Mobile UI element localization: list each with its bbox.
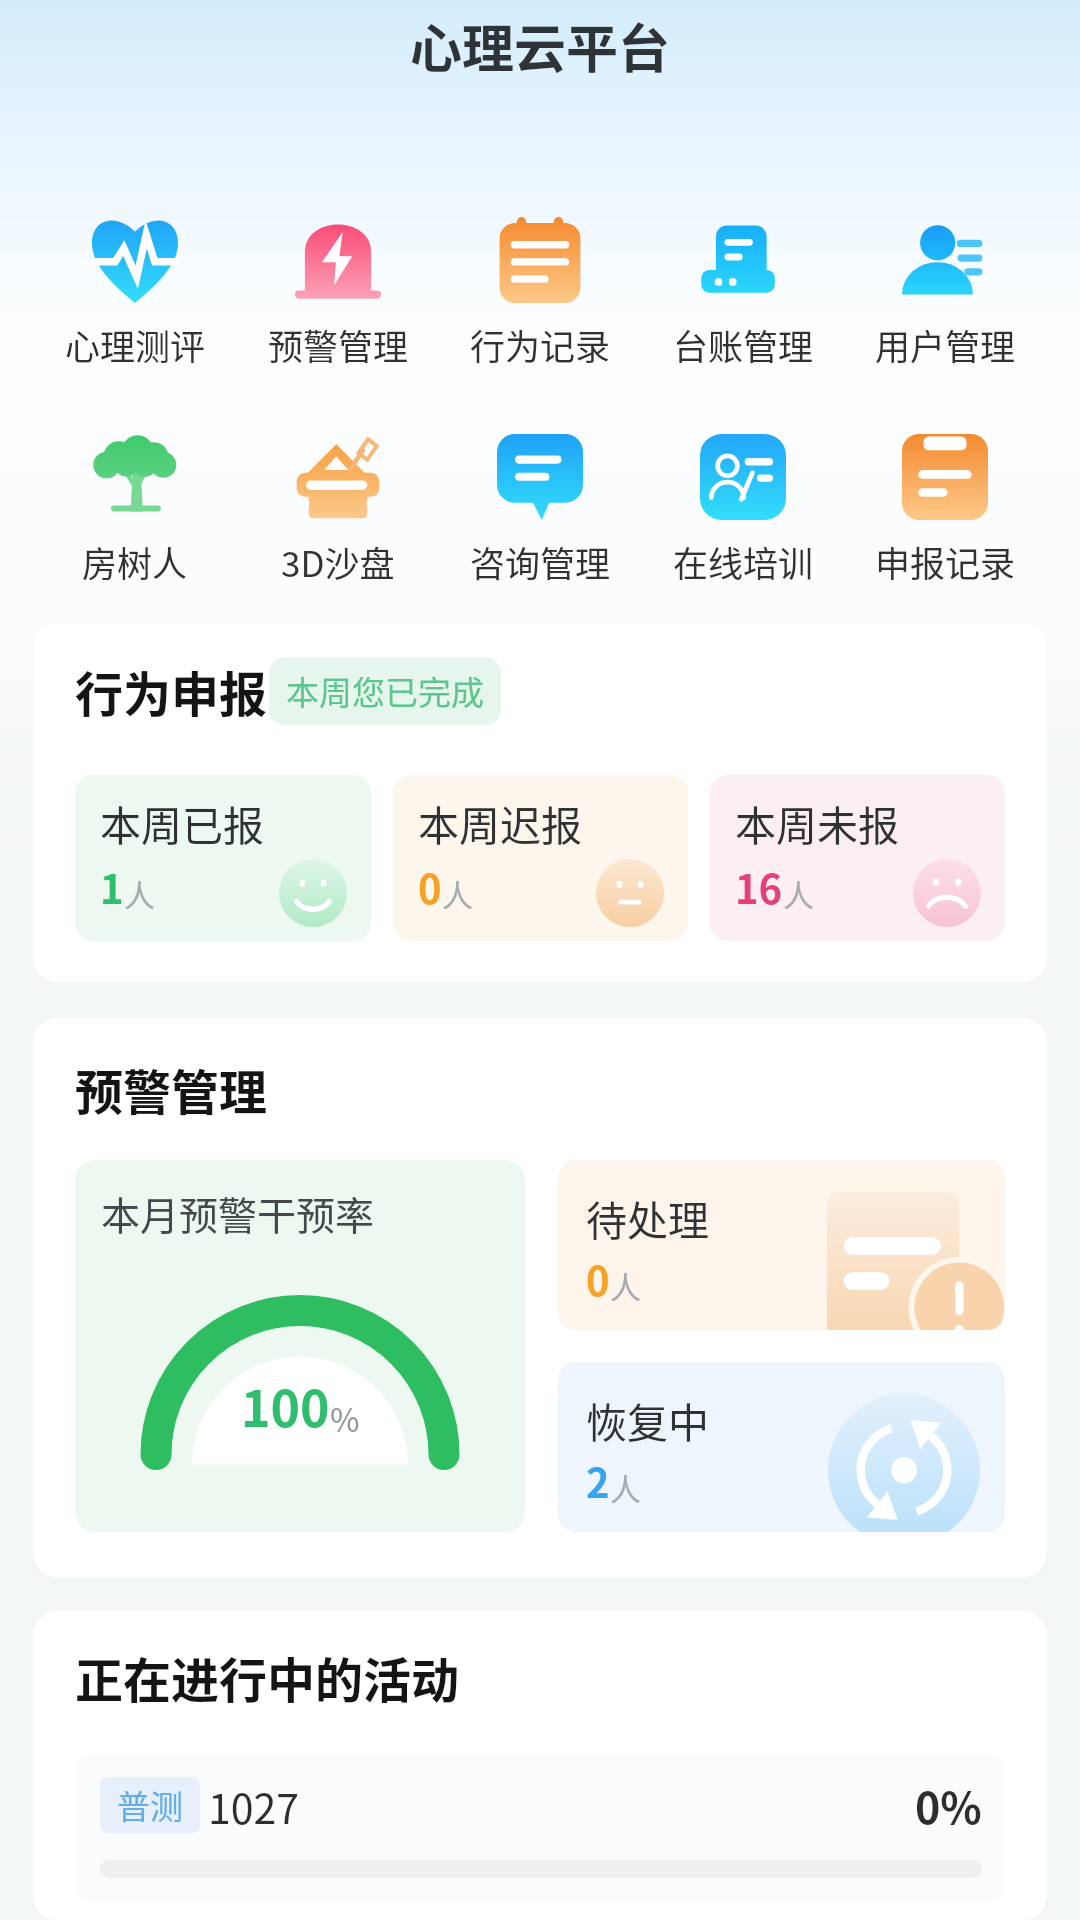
staticText: 咨询管理 bbox=[470, 536, 611, 587]
staticText: 待处理 bbox=[586, 1188, 709, 1247]
staticText: 0 bbox=[418, 858, 442, 916]
staticText: 人 bbox=[610, 1263, 641, 1308]
staticText: 人 bbox=[442, 871, 473, 916]
staticText: 恢复中 bbox=[586, 1390, 709, 1449]
button[interactable]: 申报记录 bbox=[844, 434, 1046, 587]
staticText: 心理测评 bbox=[65, 319, 206, 370]
staticText: 普测 bbox=[117, 1781, 183, 1829]
staticText: 用户管理 bbox=[875, 319, 1016, 370]
staticText: 1027 bbox=[208, 1776, 300, 1835]
button[interactable]: 恢复中 bbox=[558, 1362, 1005, 1532]
staticText: 1 bbox=[100, 858, 124, 916]
staticText: 本周迟报 bbox=[418, 793, 582, 852]
staticText: 0 bbox=[586, 1250, 610, 1308]
staticText: 申报记录 bbox=[875, 536, 1016, 587]
button[interactable]: 预警管理 bbox=[237, 217, 439, 370]
button[interactable]: 咨询管理 bbox=[439, 434, 641, 587]
staticText: 0% bbox=[915, 1774, 982, 1836]
staticText: 房树人 bbox=[82, 536, 188, 587]
button[interactable]: 心理测评 bbox=[34, 217, 236, 370]
button[interactable]: 本月预警干预率 bbox=[75, 1160, 525, 1532]
staticText: 本月预警干预率 bbox=[101, 1185, 375, 1241]
button[interactable]: 用户管理 bbox=[844, 217, 1046, 370]
staticText: 行为申报 bbox=[75, 656, 268, 726]
staticText: 在线培训 bbox=[673, 536, 814, 587]
staticText: 台账管理 bbox=[673, 319, 814, 370]
button[interactable]: 在线培训 bbox=[642, 434, 844, 587]
staticText: 人 bbox=[610, 1465, 641, 1510]
staticText: 人 bbox=[124, 871, 155, 916]
staticText: 3D沙盘 bbox=[281, 536, 395, 587]
button[interactable]: 本周已报 bbox=[75, 775, 371, 941]
staticText: 本周您已完成 bbox=[286, 667, 484, 715]
staticText: % bbox=[330, 1395, 360, 1441]
button[interactable]: 本周未报 bbox=[710, 775, 1005, 941]
button[interactable]: 普测 bbox=[75, 1755, 1005, 1901]
staticText: 2 bbox=[586, 1452, 610, 1510]
staticText: 行为记录 bbox=[470, 319, 611, 370]
button[interactable]: 台账管理 bbox=[642, 217, 844, 370]
staticText: 预警管理 bbox=[75, 1054, 268, 1124]
button[interactable]: 房树人 bbox=[34, 434, 236, 587]
button[interactable]: 本周迟报 bbox=[393, 775, 688, 941]
button[interactable]: 行为记录 bbox=[439, 217, 641, 370]
staticText: 人 bbox=[783, 871, 814, 916]
staticText: 本周未报 bbox=[735, 793, 899, 852]
button[interactable]: 待处理 bbox=[558, 1160, 1005, 1330]
button[interactable]: 3D沙盘 bbox=[237, 434, 439, 587]
staticText: 100 bbox=[241, 1369, 330, 1441]
staticText: 心理云平台 bbox=[410, 8, 671, 83]
staticText: 正在进行中的活动 bbox=[75, 1642, 460, 1712]
staticText: 16 bbox=[735, 858, 783, 916]
staticText: 预警管理 bbox=[268, 319, 409, 370]
staticText: 本周已报 bbox=[100, 793, 264, 852]
